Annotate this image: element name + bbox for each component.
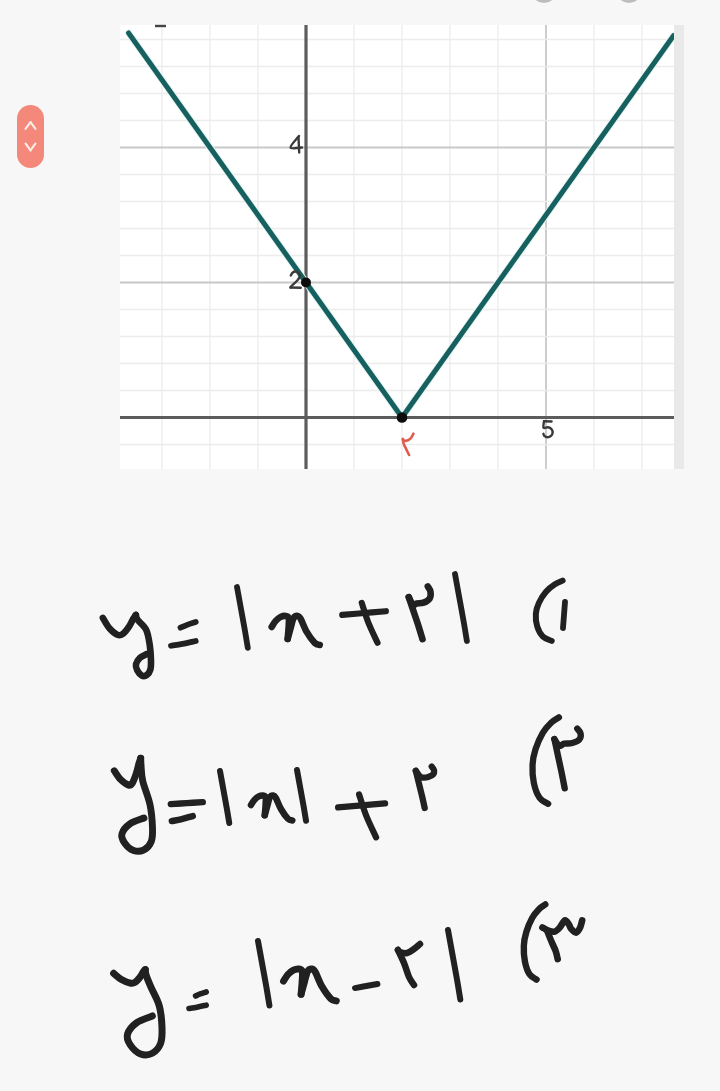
- button[interactable]: Scroll up or down: [17, 105, 44, 168]
